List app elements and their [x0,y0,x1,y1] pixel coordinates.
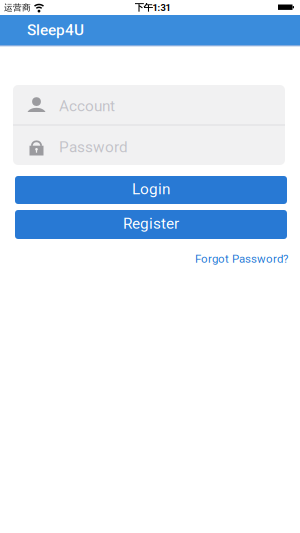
staticText: Sleep4U [27,21,84,39]
button[interactable]: Password [13,126,285,165]
button[interactable]: Forgot Password? [195,253,288,266]
staticText: Forgot Password? [195,252,288,265]
staticText: Register [123,214,179,232]
staticText: Login [132,180,170,198]
button[interactable]: Account [13,85,285,124]
staticText: Password [59,138,128,156]
button[interactable]: Register [15,210,287,239]
button[interactable]: Login [15,176,287,204]
staticText: Account [59,97,115,115]
staticText: 运营商 [4,2,31,13]
staticText: 下午1:31 [134,2,170,13]
